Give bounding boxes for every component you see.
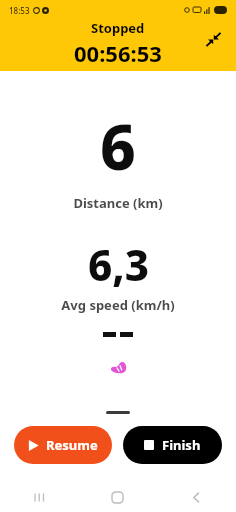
staticText: 6,3: [88, 236, 149, 293]
button[interactable]: Home: [78, 483, 157, 512]
staticText: Stopped: [91, 19, 145, 37]
staticText: 18:53: [9, 5, 30, 16]
button[interactable]: Collapse: [202, 28, 224, 50]
staticText: 00:56:53: [74, 38, 162, 68]
staticText: Distance (km): [73, 194, 163, 212]
button[interactable]: Resume: [14, 426, 112, 464]
button[interactable]: Recents: [0, 483, 78, 512]
staticText: Finish: [162, 436, 201, 454]
staticText: Resume: [46, 436, 98, 454]
staticText: 6: [100, 104, 136, 188]
staticText: Avg speed (km/h): [61, 296, 175, 314]
button[interactable]: Finish: [123, 426, 222, 464]
button[interactable]: Back: [157, 483, 236, 512]
